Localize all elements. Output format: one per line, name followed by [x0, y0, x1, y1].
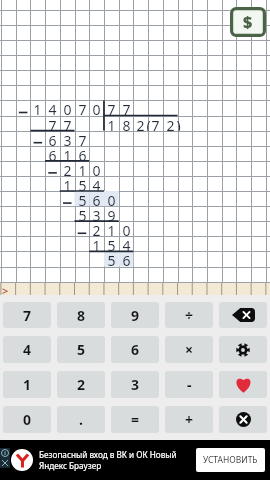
button[interactable]: =: [111, 406, 159, 433]
staticText: 8: [122, 116, 131, 131]
staticText: 0: [107, 191, 116, 206]
staticText: 1: [107, 221, 116, 236]
staticText: 1: [23, 375, 32, 394]
staticText: 4: [48, 100, 57, 115]
button[interactable]: 6: [111, 336, 159, 363]
staticText: 1: [33, 100, 42, 115]
staticText: Яндекс Браузер: [39, 460, 102, 471]
staticText: 2: [166, 116, 175, 131]
staticText: 2: [92, 221, 101, 236]
button[interactable]: Ad info: [0, 448, 10, 458]
other: Clear: [236, 412, 251, 427]
button[interactable]: >: [0, 283, 270, 295]
button[interactable]: УСТАНОВИТЬ: [203, 454, 258, 466]
button[interactable]: Clear: [219, 406, 267, 433]
other: Backspace: [232, 308, 255, 322]
staticText: 5: [78, 206, 87, 221]
button[interactable]: 0: [3, 406, 51, 433]
staticText: УСТАНОВИТЬ: [203, 454, 258, 466]
staticText: 9: [107, 206, 116, 221]
staticText: 0: [92, 161, 101, 176]
staticText: 7: [107, 100, 116, 115]
staticText: 1: [63, 146, 72, 161]
staticText: (: [146, 116, 151, 131]
staticText: 5: [107, 251, 116, 266]
staticText: 8: [77, 306, 86, 325]
staticText: 6: [78, 146, 87, 161]
button[interactable]: Money: [230, 7, 266, 37]
staticText: 7: [48, 116, 57, 131]
staticText: 3: [63, 131, 72, 146]
other: Settings: [236, 343, 250, 357]
staticText: .: [79, 410, 83, 429]
staticText: ÷: [185, 306, 194, 325]
staticText: 7: [23, 306, 32, 325]
staticText: +: [185, 410, 194, 429]
staticText: 4: [92, 176, 101, 191]
button[interactable]: Backspace: [219, 302, 267, 328]
staticText: 2: [136, 116, 145, 131]
staticText: 5: [77, 340, 86, 359]
button[interactable]: 8: [57, 302, 105, 328]
button[interactable]: 4: [3, 336, 51, 363]
staticText: 1: [92, 236, 101, 251]
button[interactable]: ×: [165, 336, 213, 363]
staticText: 1: [63, 176, 72, 191]
staticText: 6: [131, 340, 140, 359]
staticText: Безопасный вход в ВК и ОК Новый: [39, 449, 177, 460]
button[interactable]: 3: [111, 371, 159, 398]
staticText: 0: [92, 100, 101, 115]
staticText: 7: [78, 100, 87, 115]
staticText: 7: [151, 116, 160, 131]
button[interactable]: 9: [111, 302, 159, 328]
staticText: >: [2, 283, 9, 295]
staticText: 6: [122, 251, 131, 266]
staticText: 0: [122, 221, 131, 236]
staticText: $: [243, 11, 253, 33]
staticText: 6: [92, 191, 101, 206]
staticText: 2: [77, 375, 86, 394]
staticText: 3: [131, 375, 140, 394]
button[interactable]: 2: [57, 371, 105, 398]
staticText: 1: [107, 116, 116, 131]
staticText: 1: [78, 161, 87, 176]
staticText: 6: [48, 146, 57, 161]
button[interactable]: +: [165, 406, 213, 433]
staticText: 7: [63, 116, 72, 131]
staticText: ×: [185, 340, 194, 359]
staticText: 7: [78, 131, 87, 146]
staticText: -: [187, 375, 192, 394]
button[interactable]: Favorite: [219, 371, 267, 398]
staticText: 5: [78, 176, 87, 191]
staticText: 2: [63, 161, 72, 176]
staticText: 3: [92, 206, 101, 221]
button[interactable]: .: [57, 406, 105, 433]
staticText: 5: [107, 236, 116, 251]
button[interactable]: 5: [57, 336, 105, 363]
staticText: 0: [23, 410, 32, 429]
staticText: ): [176, 116, 181, 131]
staticText: 9: [131, 306, 140, 325]
button[interactable]: 7: [3, 302, 51, 328]
button[interactable]: Settings: [219, 336, 267, 363]
staticText: 7: [122, 100, 131, 115]
staticText: 4: [23, 340, 32, 359]
other: Favorite: [234, 376, 253, 393]
staticText: 4: [122, 236, 131, 251]
staticText: =: [131, 410, 140, 429]
button[interactable]: ÷: [165, 302, 213, 328]
staticText: 6: [48, 131, 57, 146]
button[interactable]: Close ad: [0, 458, 10, 468]
staticText: 5: [78, 191, 87, 206]
staticText: 0: [63, 100, 72, 115]
button[interactable]: -: [165, 371, 213, 398]
button[interactable]: 1: [3, 371, 51, 398]
